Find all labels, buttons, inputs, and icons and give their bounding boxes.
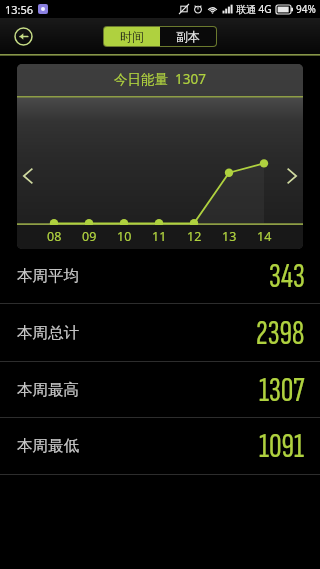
button[interactable]: 本周总计 xyxy=(0,304,320,362)
staticText: 1307 xyxy=(259,369,305,411)
staticText: 今日能量 xyxy=(114,71,168,88)
staticText: 2398 xyxy=(256,312,305,354)
staticText: 10 xyxy=(117,228,132,245)
staticText: 11 xyxy=(152,228,167,245)
staticText: 09 xyxy=(82,228,97,245)
staticText: 94% xyxy=(296,2,316,16)
button[interactable]: 副本 xyxy=(160,27,216,46)
staticText: 副本 xyxy=(176,29,200,44)
staticText: 本周总计 xyxy=(17,323,79,343)
staticText: 14 xyxy=(257,228,272,245)
button[interactable]: 本周平均 xyxy=(0,249,320,304)
staticText: 1091 xyxy=(259,425,305,467)
button[interactable]: 时间 xyxy=(104,27,160,46)
staticText: 13:56 xyxy=(5,2,34,17)
staticText: 343 xyxy=(269,255,305,297)
staticText: 12 xyxy=(187,228,202,245)
button[interactable]: 本周最高 xyxy=(0,362,320,418)
staticText: 13 xyxy=(222,228,237,245)
button[interactable]: Back xyxy=(8,21,38,51)
button[interactable]: Next xyxy=(278,162,303,190)
button[interactable]: Previous xyxy=(17,162,42,190)
staticText: 本周最低 xyxy=(17,436,79,456)
button[interactable]: 本周最低 xyxy=(0,418,320,475)
staticText: 联通 4G xyxy=(236,2,272,16)
staticText: 本周平均 xyxy=(17,266,79,286)
staticText: 时间 xyxy=(120,29,144,44)
staticText: 1307 xyxy=(175,70,206,88)
staticText: 08 xyxy=(47,228,62,245)
staticText: 本周最高 xyxy=(17,380,79,400)
